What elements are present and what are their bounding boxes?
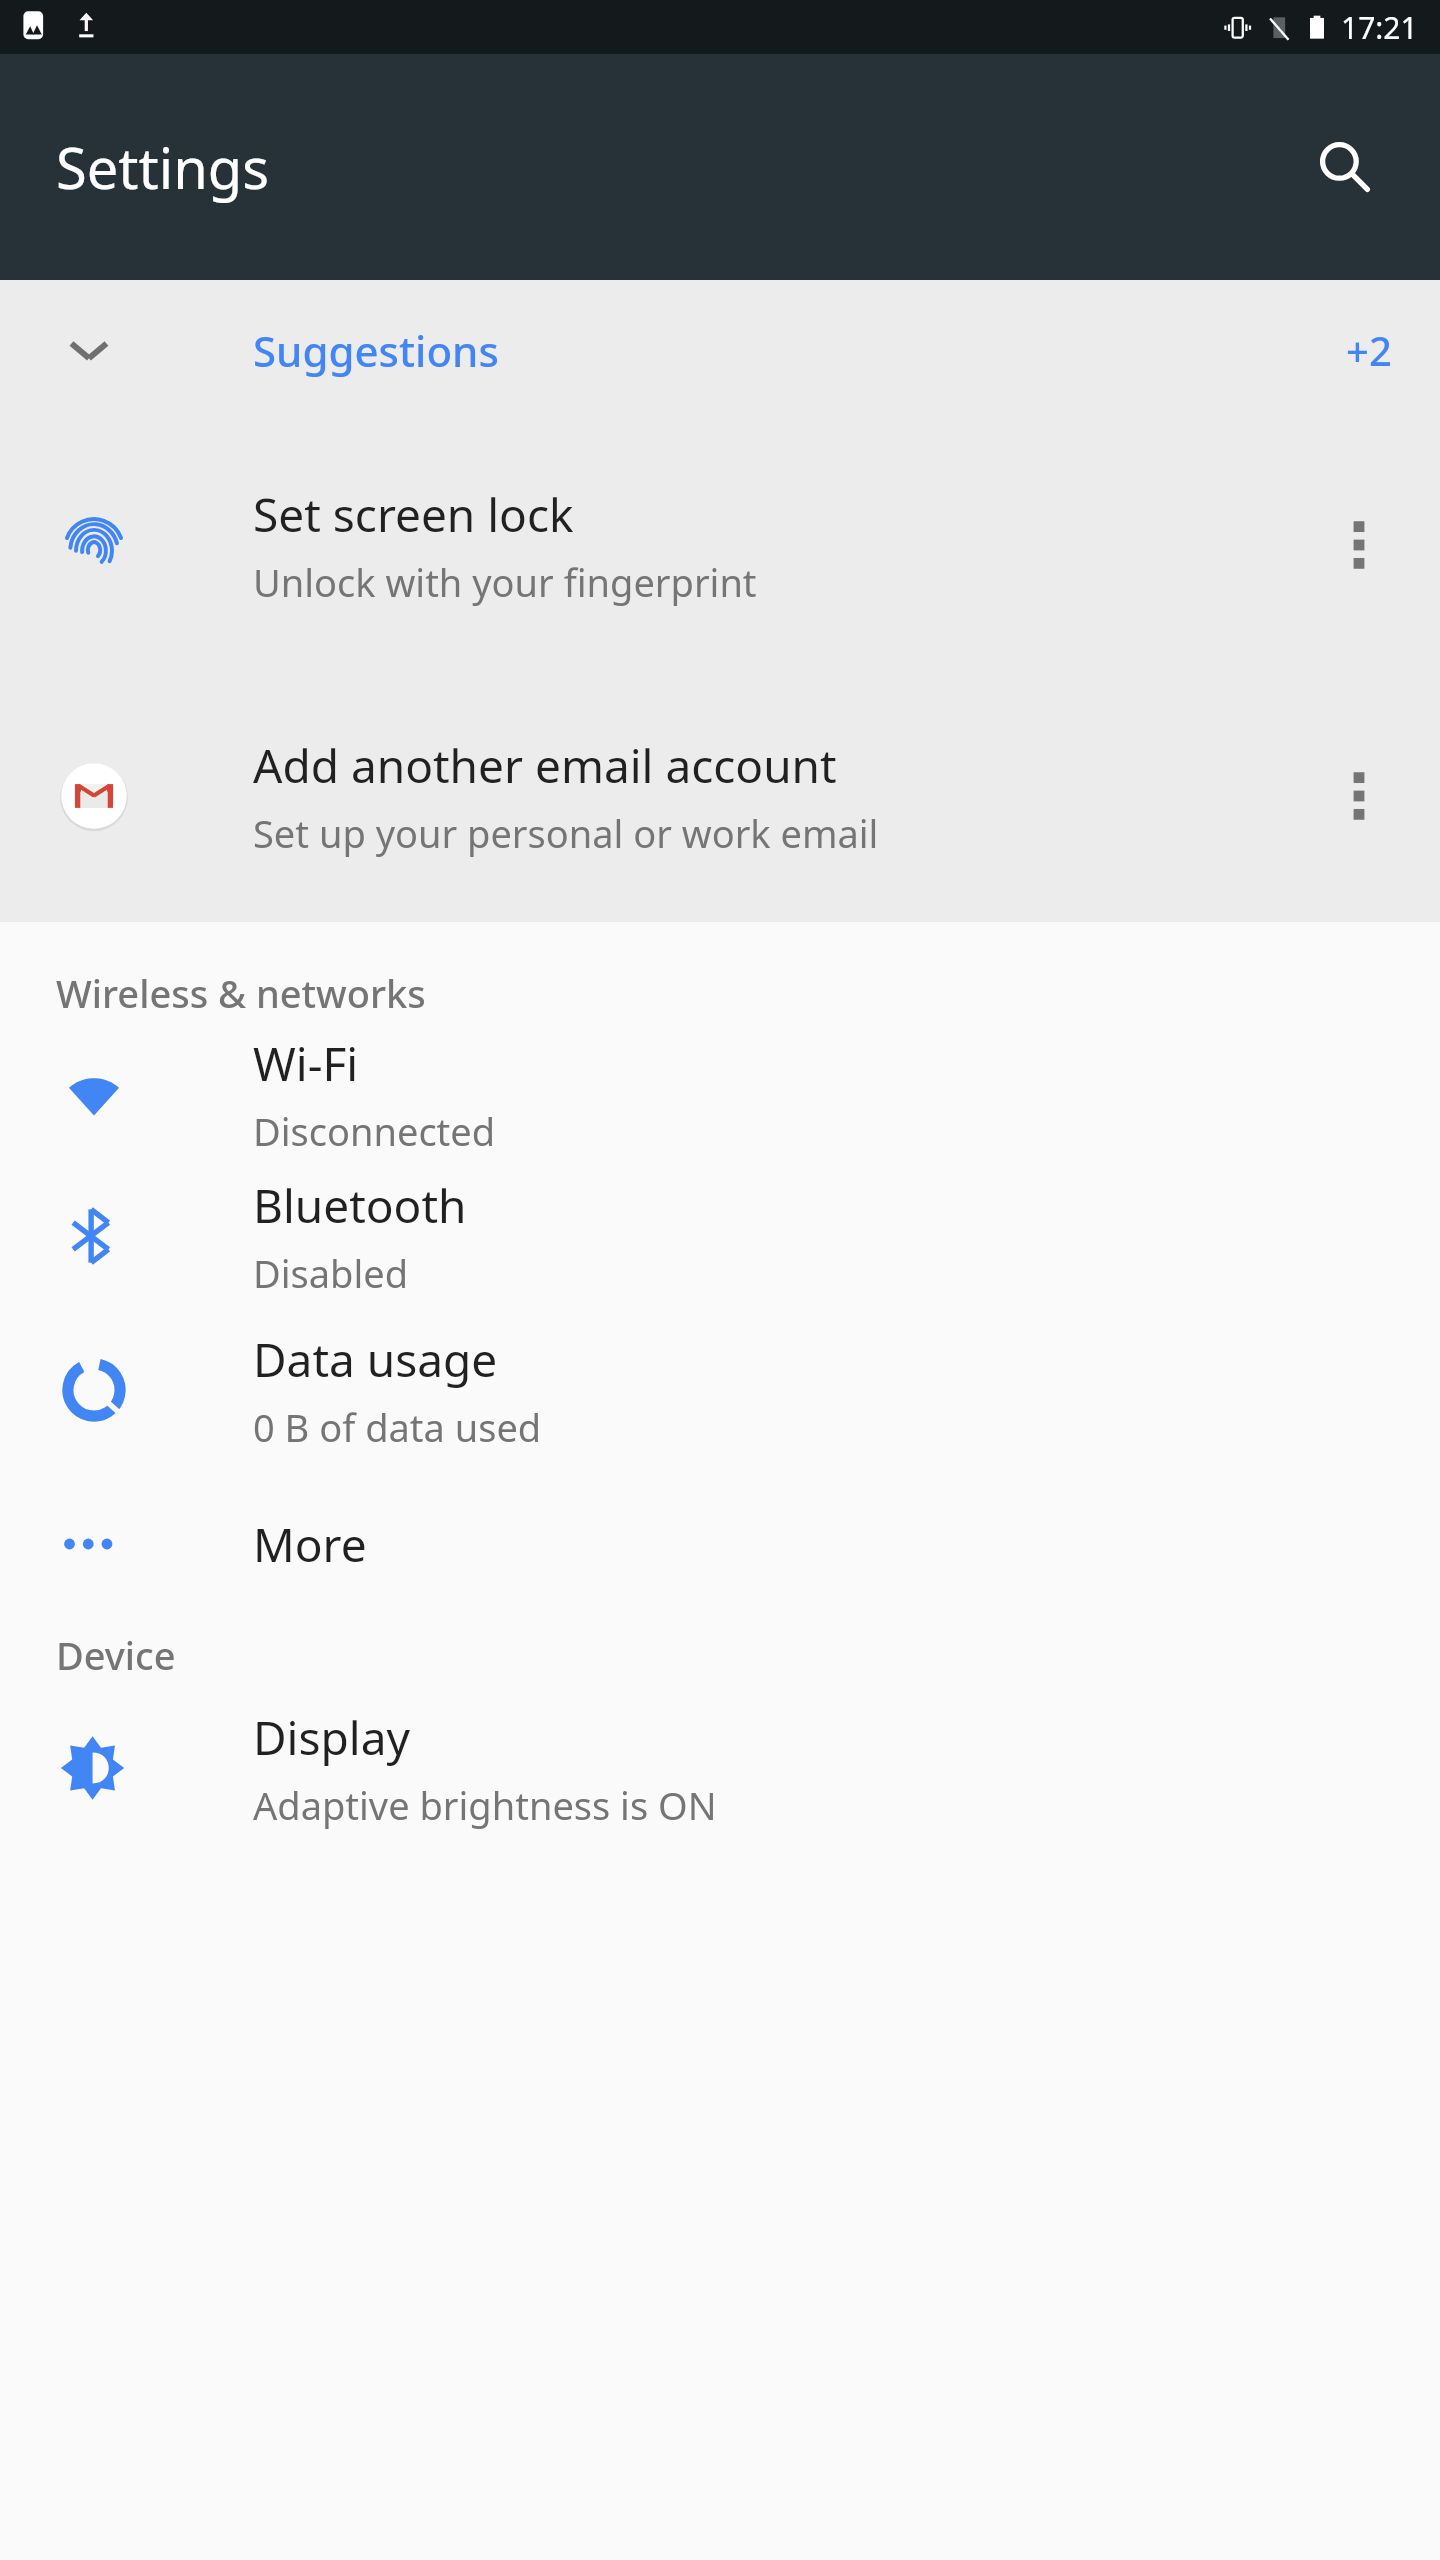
staticText: Settings [56, 129, 270, 205]
staticText: Adaptive brightness is ON [253, 1779, 717, 1831]
staticText: Set up your personal or work email [253, 807, 879, 859]
staticText: Disconnected [253, 1105, 496, 1157]
button[interactable]: Add another email account [0, 670, 1440, 922]
staticText: 17:21 [1341, 7, 1418, 48]
button[interactable]: Suggestions [0, 280, 1440, 420]
button[interactable]: Bluetooth [0, 1159, 1440, 1313]
staticText: Set screen lock [253, 483, 574, 546]
staticText: Suggestions [253, 322, 499, 379]
staticText: More [253, 1513, 367, 1576]
staticText: Data usage [253, 1328, 498, 1391]
button[interactable]: More options [1304, 741, 1414, 851]
staticText: Add another email account [253, 734, 837, 797]
staticText: 0 B of data used [253, 1401, 542, 1453]
staticText: Wireless & networks [56, 967, 426, 1019]
button[interactable]: Wi-Fi [0, 1029, 1440, 1159]
button[interactable]: Search [1290, 112, 1400, 222]
button[interactable]: Set screen lock [0, 420, 1440, 670]
staticText: Disabled [253, 1247, 409, 1299]
staticText: Unlock with your fingerprint [253, 556, 757, 608]
button[interactable]: More options [1304, 490, 1414, 600]
button[interactable]: Data usage [0, 1313, 1440, 1467]
button[interactable]: More [0, 1467, 1440, 1621]
staticText: Wi-Fi [253, 1032, 359, 1095]
staticText: Bluetooth [253, 1174, 467, 1237]
staticText: +2 [1346, 323, 1392, 377]
button[interactable]: Display [0, 1691, 1440, 1845]
staticText: Display [253, 1706, 410, 1769]
staticText: Device [56, 1629, 176, 1681]
